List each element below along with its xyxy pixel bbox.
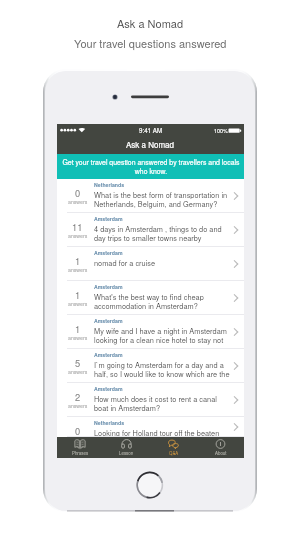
staticText: What's the best way to find cheap accomm…: [94, 292, 204, 311]
staticText: Phrases: [72, 450, 89, 456]
button[interactable]: About: [197, 437, 244, 458]
staticText: Ask a Nomad: [117, 15, 184, 31]
button[interactable]: Phrases: [57, 437, 103, 458]
other: Lesson: [121, 439, 132, 449]
button[interactable]: 1: [57, 281, 244, 315]
staticText: 9:41 AM: [139, 126, 163, 135]
staticText: answers: [68, 334, 88, 341]
button[interactable]: 0: [57, 417, 244, 437]
staticText: answers: [68, 436, 88, 443]
button[interactable]: 5: [57, 349, 244, 383]
staticText: 2: [75, 390, 81, 403]
staticText: Netherlands: [94, 181, 125, 188]
staticText: 11: [72, 220, 83, 233]
button[interactable]: 1: [57, 247, 244, 281]
other: Phrases: [74, 439, 86, 449]
staticText: I`m going to Amsterdam for a day and a h…: [94, 360, 230, 379]
staticText: Q&A: [169, 450, 179, 456]
staticText: answers: [68, 402, 88, 409]
staticText: My wife and I have a night in Amsterdam …: [94, 326, 227, 345]
button[interactable]: 1: [57, 315, 244, 349]
staticText: 100%: [214, 127, 228, 135]
staticText: Netherlands: [94, 419, 125, 426]
staticText: answers: [68, 266, 88, 273]
staticText: 1: [75, 254, 81, 267]
staticText: Lesson: [119, 450, 134, 456]
staticText: 4 days in Amsterdam , things to do and d…: [94, 224, 222, 243]
staticText: answers: [68, 368, 88, 375]
staticText: 1: [75, 288, 81, 301]
staticText: 0: [75, 424, 81, 437]
staticText: How much does it cost to rent a canal bo…: [94, 394, 217, 413]
staticText: Looking for Holland tour off the beaten: [94, 428, 220, 439]
staticText: 1: [75, 322, 81, 335]
button[interactable]: Lesson: [103, 437, 150, 458]
staticText: answers: [68, 300, 88, 307]
staticText: Amsterdam: [94, 317, 123, 324]
other: About: [215, 439, 226, 449]
button[interactable]: 11: [57, 213, 244, 247]
staticText: Your travel questions answered: [74, 35, 227, 51]
staticText: answers: [68, 198, 88, 205]
staticText: Amsterdam: [94, 283, 123, 290]
staticText: nomad for a cruise: [94, 258, 156, 269]
staticText: About: [215, 450, 227, 456]
button[interactable]: Q and A: [150, 437, 197, 458]
staticText: Amsterdam: [94, 215, 123, 222]
button[interactable]: 2: [57, 383, 244, 417]
staticText: Get your travel question answered by tra…: [62, 157, 240, 176]
staticText: Amsterdam: [94, 385, 123, 392]
staticText: Amsterdam: [94, 351, 123, 358]
staticText: Ask a Nomad: [126, 139, 175, 150]
staticText: What is the best form of transportation …: [94, 190, 228, 209]
staticText: 5: [75, 356, 81, 369]
staticText: answers: [68, 232, 88, 239]
other: Q and A: [168, 439, 179, 449]
staticText: 0: [75, 186, 81, 199]
staticText: Amsterdam: [94, 249, 123, 256]
button[interactable]: 0: [57, 179, 244, 213]
